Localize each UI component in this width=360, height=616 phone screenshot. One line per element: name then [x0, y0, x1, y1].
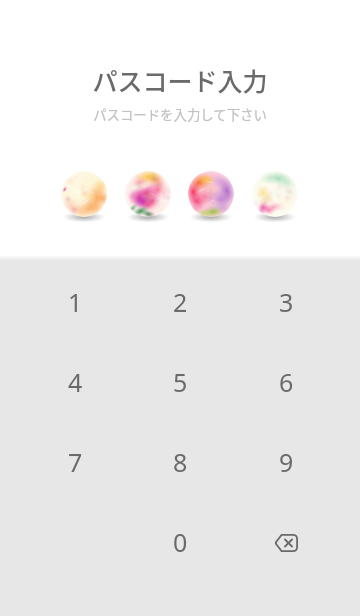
button[interactable]: 3: [233, 261, 339, 341]
staticText: 3: [279, 285, 294, 319]
button[interactable]: 7: [22, 421, 128, 501]
button[interactable]: 0: [127, 501, 233, 581]
other: Passcode digit 1: [57, 167, 111, 221]
staticText: 8: [173, 445, 188, 479]
other: Passcode digit 4: [248, 167, 302, 221]
other: Passcode digit 2: [121, 167, 175, 221]
button[interactable]: 6: [233, 341, 339, 421]
staticText: 9: [279, 445, 294, 479]
staticText: 1: [68, 285, 83, 319]
other: Passcode digit 3: [184, 167, 238, 221]
button[interactable]: Delete: [233, 501, 339, 581]
staticText: 2: [173, 285, 188, 319]
button[interactable]: 8: [127, 421, 233, 501]
staticText: 5: [173, 365, 188, 399]
other: Delete: [274, 534, 298, 552]
staticText: 7: [68, 445, 83, 479]
button[interactable]: 9: [233, 421, 339, 501]
staticText: 0: [173, 525, 188, 559]
staticText: パスコードを入力して下さい: [0, 104, 360, 123]
staticText: 6: [279, 365, 294, 399]
button[interactable]: 1: [22, 261, 128, 341]
button[interactable]: 5: [127, 341, 233, 421]
staticText: 4: [68, 365, 83, 399]
button[interactable]: 2: [127, 261, 233, 341]
button[interactable]: 4: [22, 341, 128, 421]
staticText: パスコード入力: [0, 62, 360, 98]
